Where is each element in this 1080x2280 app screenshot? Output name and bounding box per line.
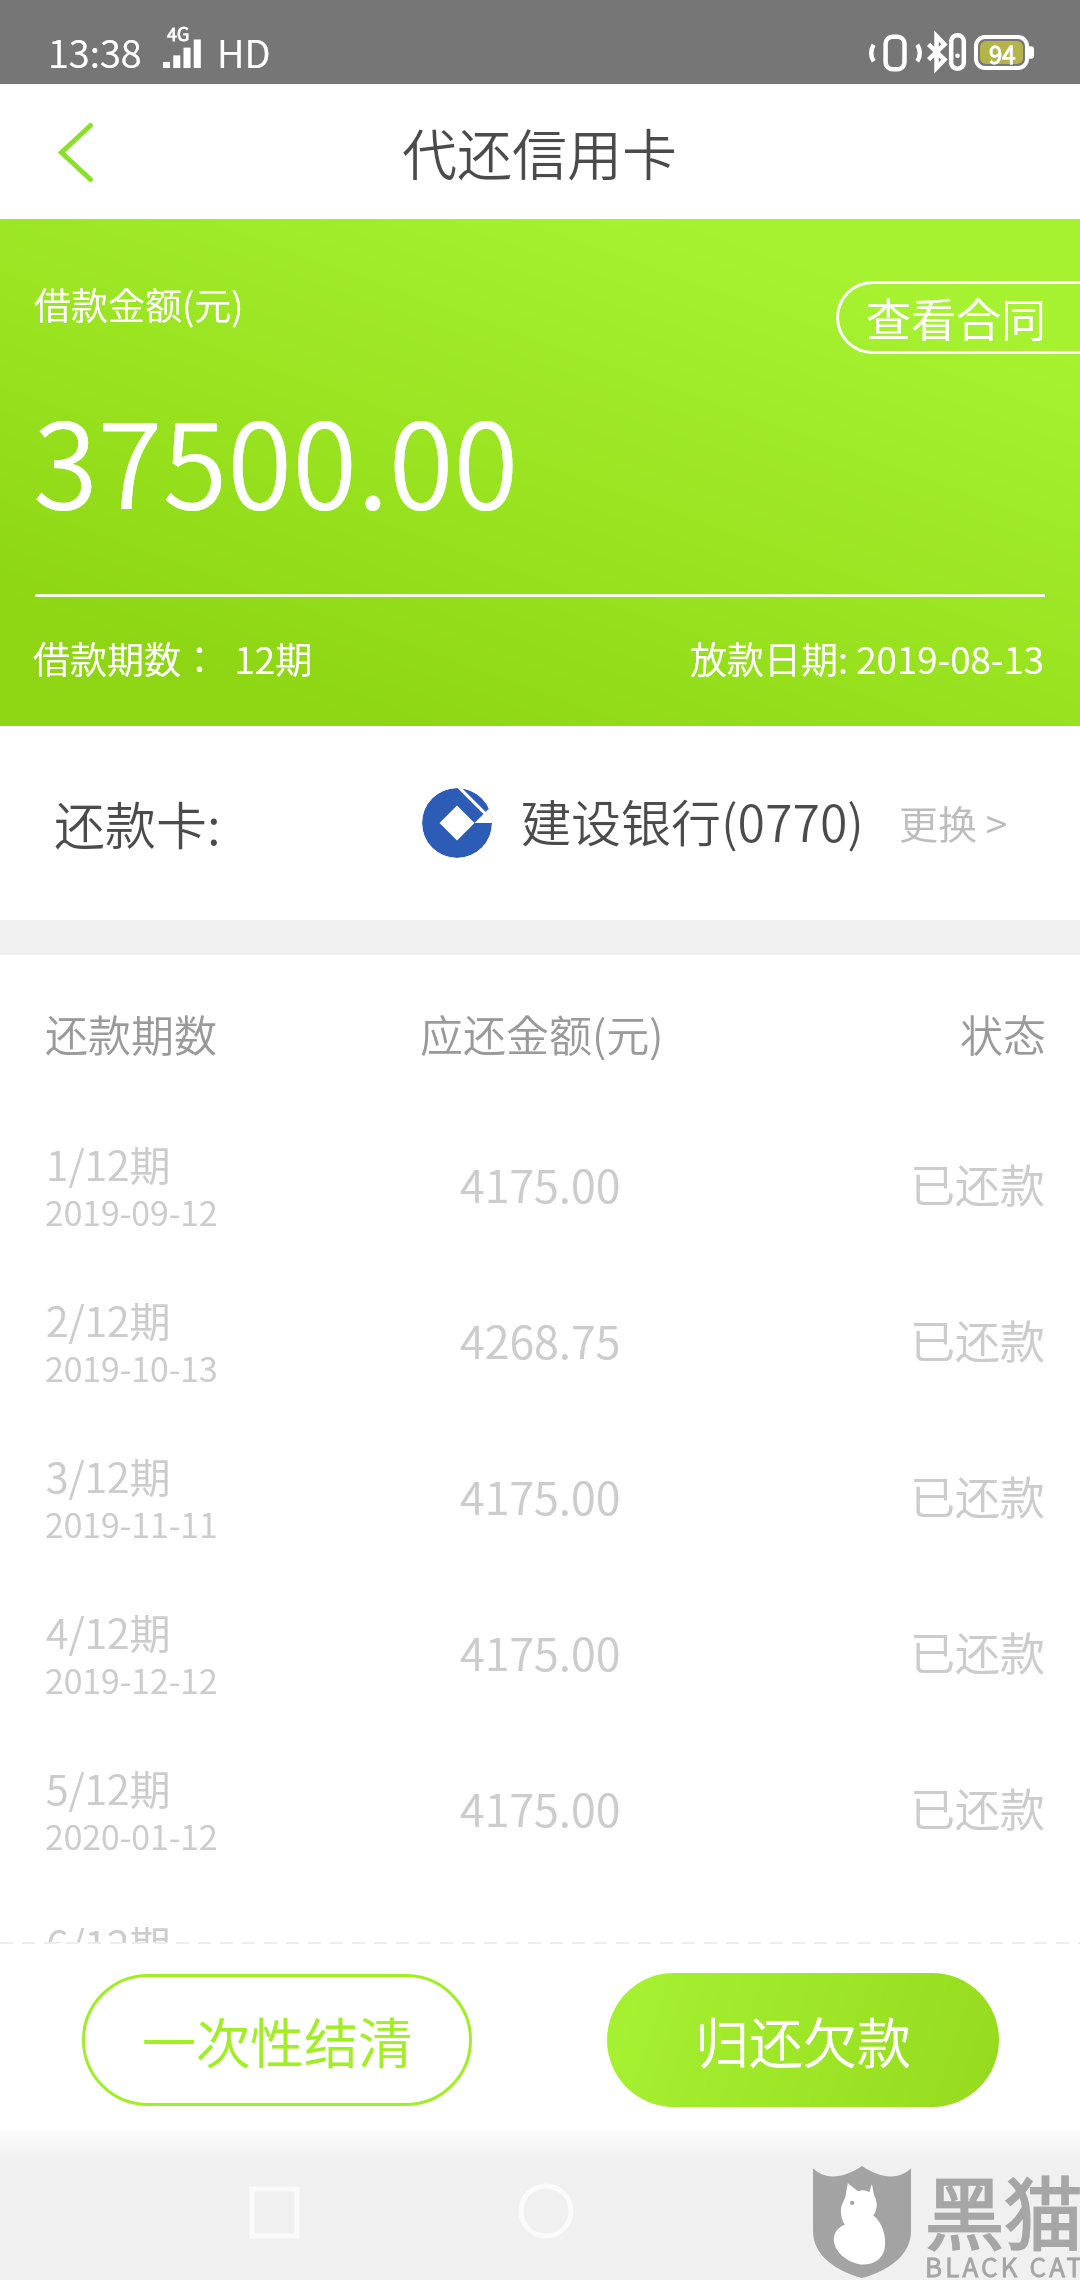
button[interactable]: Recents (250, 2187, 299, 2238)
staticText: 4175.00 (460, 1775, 621, 1840)
staticText: 已还款 (910, 1463, 1046, 1528)
staticText: 2/12期 (46, 1289, 171, 1348)
staticText: 应还金额(元) (420, 1002, 664, 1064)
staticText: 代还信用卡 (402, 111, 678, 191)
staticText: 已还款 (910, 1151, 1046, 1216)
staticText: 4268.75 (460, 1307, 621, 1372)
staticText: HD (217, 24, 271, 79)
staticText: 已还款 (910, 1775, 1046, 1840)
staticText: 94 (989, 36, 1016, 67)
staticText: 还款卡: (54, 786, 221, 860)
button[interactable]: Back (21, 97, 131, 207)
staticText: 一次性结清 (142, 2001, 412, 2079)
button[interactable]: 5/12期 (0, 1764, 1080, 1920)
staticText: 37500.00 (33, 372, 519, 543)
staticText: 4175.00 (460, 1463, 621, 1528)
staticText: 已还款 (910, 1931, 1046, 1943)
button[interactable]: 查看合同 (836, 281, 1080, 354)
button[interactable]: 4/12期 (0, 1608, 1080, 1764)
staticText: 2019-12-12 (45, 1655, 218, 1704)
staticText: 还款期数 (45, 1002, 217, 1064)
staticText: 建设银行(0770) (521, 784, 864, 856)
staticText: 13:38 (48, 24, 142, 79)
staticText: 黑猫 (925, 2152, 1080, 2266)
staticText: 4/12期 (46, 1601, 171, 1660)
staticText: 更换 > (899, 794, 1008, 850)
button[interactable]: 一次性结清 (82, 1974, 472, 2106)
staticText: BLACK CAT (925, 2247, 1080, 2280)
button[interactable]: 归还欠款 (607, 1973, 999, 2107)
staticText: 已还款 (910, 1619, 1046, 1684)
staticText: 查看合同 (866, 285, 1047, 350)
staticText: 借款金额(元) (34, 277, 244, 331)
staticText: 状态 (960, 1002, 1046, 1064)
staticText: 2019-09-12 (45, 1187, 218, 1236)
staticText: 5/12期 (46, 1757, 171, 1816)
staticText: 6/12期 (46, 1913, 171, 1943)
button[interactable]: 6/12期 (0, 1920, 1080, 1943)
staticText: 借款期数： 12期 (33, 631, 313, 685)
staticText: 2019-10-13 (45, 1343, 218, 1392)
button[interactable]: Home (518, 2183, 574, 2239)
staticText: 放款日期: 2019-08-13 (690, 631, 1045, 685)
staticText: 2020-01-12 (45, 1811, 218, 1860)
staticText: 归还欠款 (695, 2001, 911, 2079)
staticText: 4175.00 (460, 1931, 621, 1943)
staticText: 4G (167, 20, 190, 46)
button[interactable]: 1/12期 (0, 1140, 1080, 1296)
staticText: 1/12期 (46, 1133, 171, 1192)
button[interactable]: 还款卡: (0, 726, 1080, 920)
staticText: 3/12期 (46, 1445, 171, 1504)
staticText: 4175.00 (460, 1151, 621, 1216)
button[interactable]: 3/12期 (0, 1452, 1080, 1608)
button[interactable]: 2/12期 (0, 1296, 1080, 1452)
staticText: 4175.00 (460, 1619, 621, 1684)
staticText: 2019-11-11 (45, 1499, 218, 1548)
staticText: 已还款 (910, 1307, 1046, 1372)
